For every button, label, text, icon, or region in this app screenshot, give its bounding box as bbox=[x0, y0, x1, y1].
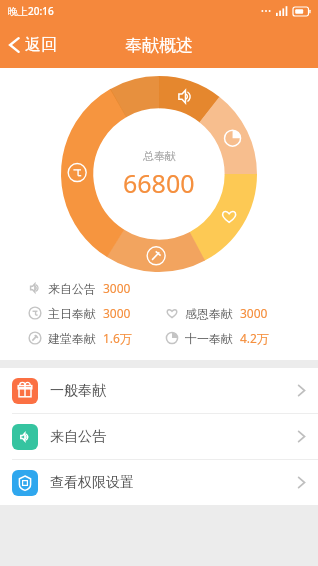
staticText: 奉献概述 bbox=[125, 35, 193, 56]
staticText: 1.6万 bbox=[103, 330, 132, 346]
staticText: 66800 bbox=[123, 166, 195, 200]
staticText: 主日奉献 bbox=[48, 306, 96, 321]
button[interactable]: 一般奉献 bbox=[0, 368, 318, 414]
staticText: 来自公告 bbox=[50, 428, 106, 446]
staticText: 十一奉献 bbox=[185, 331, 233, 346]
staticText: 一般奉献 bbox=[50, 382, 106, 400]
staticText: 建堂奉献 bbox=[48, 331, 96, 346]
button[interactable]: 查看权限设置 bbox=[0, 460, 318, 505]
staticText: 返回 bbox=[25, 35, 57, 55]
staticText: 总奉献 bbox=[143, 149, 176, 163]
staticText: 感恩奉献 bbox=[185, 306, 233, 321]
button[interactable]: 来自公告 bbox=[0, 414, 318, 460]
staticText: 4.2万 bbox=[240, 330, 269, 346]
staticText: 3000 bbox=[103, 280, 131, 296]
staticText: 晚上20:16 bbox=[8, 4, 54, 18]
staticText: 查看权限设置 bbox=[50, 474, 134, 492]
staticText: 来自公告 bbox=[48, 281, 96, 296]
staticText: 3000 bbox=[240, 305, 268, 321]
staticText: 3000 bbox=[103, 305, 131, 321]
button[interactable]: 返回 bbox=[0, 29, 69, 61]
